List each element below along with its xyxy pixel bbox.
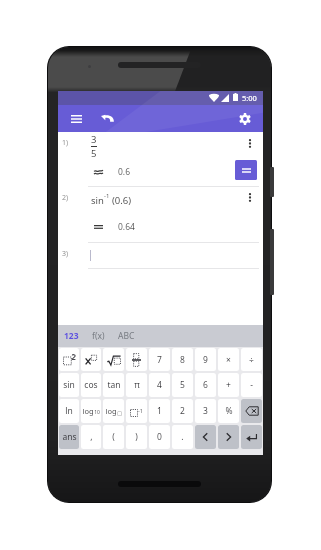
- staticText: 1): [62, 138, 69, 148]
- staticText: cos: [84, 379, 98, 391]
- button[interactable]: -: [241, 373, 262, 397]
- button[interactable]: log: [103, 399, 124, 423]
- button[interactable]: log: [81, 399, 101, 423]
- other: Move left: [202, 432, 209, 442]
- staticText: 6: [203, 379, 208, 391]
- staticText: log: [82, 406, 94, 416]
- button[interactable]: Equals: [235, 160, 257, 180]
- button[interactable]: [126, 348, 147, 371]
- button[interactable]: 123: [64, 330, 79, 342]
- button[interactable]: Settings: [233, 105, 256, 132]
- button[interactable]: ,: [81, 425, 101, 449]
- staticText: +: [226, 379, 231, 391]
- button[interactable]: (: [103, 425, 124, 449]
- button[interactable]: ÷: [241, 348, 262, 371]
- button[interactable]: +: [218, 373, 239, 397]
- button[interactable]: π: [126, 373, 147, 397]
- button[interactable]: -1: [126, 399, 147, 423]
- button[interactable]: Move left: [195, 425, 216, 449]
- staticText: 2: [180, 405, 185, 417]
- staticText: 1: [157, 405, 162, 417]
- button[interactable]: cos: [81, 373, 101, 397]
- button[interactable]: ): [126, 425, 147, 449]
- button[interactable]: More options: [243, 135, 257, 151]
- button[interactable]: ABC: [118, 330, 135, 342]
- staticText: 4: [157, 379, 162, 391]
- staticText: 3: [91, 133, 97, 146]
- button[interactable]: [103, 348, 124, 371]
- button[interactable]: ×: [218, 348, 239, 371]
- button[interactable]: 3: [195, 399, 216, 423]
- button[interactable]: 6: [195, 373, 216, 397]
- button[interactable]: More options: [243, 189, 257, 205]
- staticText: 8: [180, 354, 185, 366]
- button[interactable]: Backspace: [241, 399, 262, 423]
- button[interactable]: 5: [172, 373, 193, 397]
- button[interactable]: 4: [149, 373, 170, 397]
- staticText: ,: [90, 431, 93, 443]
- staticText: -1: [104, 192, 110, 200]
- staticText: 2): [62, 193, 69, 203]
- staticText: 0: [157, 431, 162, 443]
- staticText: 0.6: [118, 166, 131, 178]
- button[interactable]: sin: [59, 373, 79, 397]
- button[interactable]: tan: [103, 373, 124, 397]
- staticText: ): [135, 431, 138, 443]
- button[interactable]: 8: [172, 348, 193, 371]
- staticText: 3: [203, 405, 208, 417]
- button[interactable]: Menu: [65, 105, 88, 132]
- staticText: □: [117, 410, 122, 416]
- other: Move right: [225, 432, 232, 442]
- staticText: 5: [180, 379, 185, 391]
- staticText: π: [134, 379, 140, 391]
- button[interactable]: ln: [59, 399, 79, 423]
- staticText: %: [225, 405, 233, 417]
- staticText: (0.6): [112, 194, 132, 207]
- staticText: ABC: [118, 330, 135, 342]
- staticText: 5:00: [242, 93, 257, 103]
- button[interactable]: f(x): [92, 330, 105, 342]
- staticText: log: [105, 406, 117, 416]
- staticText: tan: [107, 379, 121, 391]
- button[interactable]: 0: [149, 425, 170, 449]
- other: Enter: [246, 433, 257, 442]
- staticText: sin: [63, 379, 75, 391]
- button[interactable]: [59, 348, 79, 371]
- button[interactable]: %: [218, 399, 239, 423]
- staticText: (: [112, 431, 115, 443]
- staticText: f(x): [92, 330, 105, 342]
- staticText: ÷: [249, 354, 254, 366]
- staticText: -: [250, 379, 253, 391]
- staticText: 3): [62, 249, 69, 259]
- staticText: sin: [91, 194, 104, 207]
- button[interactable]: [81, 348, 101, 371]
- staticText: 5: [91, 147, 97, 160]
- staticText: 0.64: [118, 221, 135, 233]
- button[interactable]: ans: [59, 425, 79, 449]
- staticText: ln: [65, 405, 73, 417]
- button[interactable]: Enter: [241, 425, 262, 449]
- button[interactable]: 2: [172, 399, 193, 423]
- staticText: 123: [64, 330, 79, 342]
- button[interactable]: 9: [195, 348, 216, 371]
- button[interactable]: 7: [149, 348, 170, 371]
- button[interactable]: Undo: [96, 105, 119, 132]
- staticText: ans: [62, 431, 77, 443]
- button[interactable]: .: [172, 425, 193, 449]
- staticText: .: [181, 431, 184, 443]
- staticText: 9: [203, 354, 208, 366]
- button[interactable]: Move right: [218, 425, 239, 449]
- staticText: ×: [226, 354, 231, 366]
- button[interactable]: 1: [149, 399, 170, 423]
- other: Backspace: [245, 406, 259, 416]
- staticText: -1: [138, 407, 143, 414]
- staticText: 7: [157, 354, 162, 366]
- staticText: 10: [94, 409, 100, 416]
